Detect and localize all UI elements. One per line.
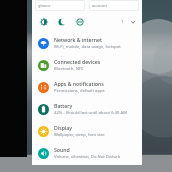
staticText: Wi-Fi, mobile, data usage, hotspot [54, 44, 121, 50]
staticText: Volume, vibration, Do Not Disturb [54, 154, 121, 160]
button[interactable]: Apps & notifications [32, 76, 142, 98]
button[interactable]: Sound [32, 142, 142, 164]
staticText: Wallpaper, sleep, font size [54, 132, 105, 138]
staticText: account [92, 3, 107, 8]
button[interactable]: Night light [56, 16, 67, 27]
staticText: Apps & notifications [54, 80, 104, 87]
staticText: Connected devices [54, 58, 101, 65]
button[interactable]: glance [35, 0, 85, 11]
button[interactable]: Do not disturb [74, 16, 85, 27]
button[interactable]: Display [32, 120, 142, 142]
button[interactable]: Expand [128, 17, 137, 26]
staticText: 1 [121, 19, 124, 24]
staticText: Permissions, default apps [54, 88, 105, 94]
staticText: Bluetooth, NFC [54, 66, 84, 72]
staticText: 42% - Should last until about 6:30 AM [54, 110, 128, 116]
staticText: Display [54, 124, 73, 131]
button[interactable]: Connected devices [32, 54, 142, 76]
button[interactable]: Brightness [38, 16, 49, 27]
button[interactable]: Battery [32, 98, 142, 120]
staticText: Network & internet [54, 36, 102, 43]
staticText: glance [38, 3, 51, 8]
staticText: Battery [54, 102, 73, 109]
button[interactable]: Network & internet [32, 32, 142, 54]
button[interactable]: account [89, 0, 139, 11]
staticText: Sound [54, 146, 70, 153]
